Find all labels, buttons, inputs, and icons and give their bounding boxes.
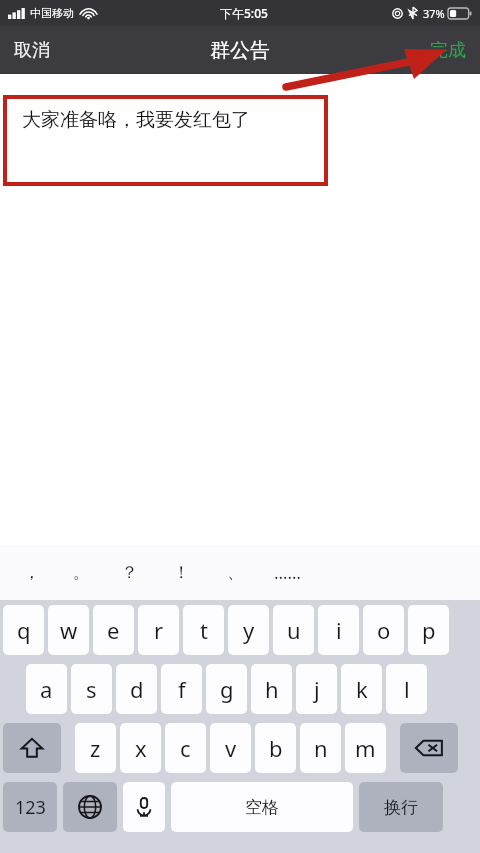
- button[interactable]: a: [26, 664, 67, 714]
- staticText: i: [336, 615, 342, 645]
- button[interactable]: g: [206, 664, 247, 714]
- button[interactable]: Delete: [400, 723, 458, 773]
- button[interactable]: z: [75, 723, 116, 773]
- button[interactable]: u: [273, 605, 314, 655]
- staticText: 中国移动: [30, 6, 74, 20]
- staticText: p: [422, 615, 436, 645]
- button[interactable]: d: [116, 664, 157, 714]
- button[interactable]: 大家准备咯，我要发红包了: [7, 99, 324, 182]
- button[interactable]: m: [345, 723, 386, 773]
- button[interactable]: q: [3, 605, 44, 655]
- button[interactable]: 。: [58, 545, 104, 600]
- button[interactable]: 空格: [171, 782, 353, 832]
- staticText: 换行: [384, 797, 418, 818]
- staticText: 。: [73, 562, 90, 583]
- button[interactable]: k: [341, 664, 382, 714]
- staticText: y: [243, 615, 255, 645]
- staticText: f: [178, 674, 186, 704]
- staticText: w: [60, 615, 78, 645]
- staticText: m: [355, 733, 376, 763]
- button[interactable]: x: [120, 723, 161, 773]
- button[interactable]: ？: [106, 545, 152, 600]
- staticText: 完成: [430, 39, 466, 62]
- button[interactable]: ！: [158, 545, 204, 600]
- button[interactable]: ……: [264, 545, 310, 600]
- button[interactable]: b: [255, 723, 296, 773]
- button[interactable]: r: [138, 605, 179, 655]
- button[interactable]: ，: [8, 545, 54, 600]
- button[interactable]: 123: [3, 782, 57, 832]
- button[interactable]: p: [408, 605, 449, 655]
- staticText: e: [107, 615, 120, 645]
- button[interactable]: s: [71, 664, 112, 714]
- staticText: u: [287, 615, 301, 645]
- button[interactable]: e: [93, 605, 134, 655]
- staticText: h: [265, 674, 279, 704]
- staticText: 123: [15, 795, 46, 820]
- staticText: 空格: [245, 797, 279, 818]
- staticText: 下午5:05: [220, 5, 268, 21]
- button[interactable]: o: [363, 605, 404, 655]
- staticText: a: [40, 674, 53, 704]
- staticText: ，: [23, 562, 40, 583]
- staticText: 大家准备咯，我要发红包了: [22, 108, 250, 132]
- button[interactable]: v: [210, 723, 251, 773]
- button[interactable]: y: [228, 605, 269, 655]
- button[interactable]: 取消: [14, 26, 50, 74]
- staticText: ……: [274, 561, 301, 584]
- button[interactable]: Change keyboard: [63, 782, 117, 832]
- staticText: s: [86, 674, 97, 704]
- staticText: z: [90, 733, 101, 763]
- staticText: g: [220, 674, 234, 704]
- button[interactable]: Voice input: [123, 782, 165, 832]
- button[interactable]: n: [300, 723, 341, 773]
- button[interactable]: w: [48, 605, 89, 655]
- button[interactable]: l: [386, 664, 427, 714]
- staticText: k: [356, 674, 368, 704]
- staticText: t: [200, 615, 208, 645]
- staticText: r: [154, 615, 164, 645]
- staticText: 取消: [14, 39, 50, 62]
- button[interactable]: Shift: [3, 723, 61, 773]
- staticText: ？: [121, 562, 138, 583]
- staticText: 37%: [423, 6, 445, 21]
- staticText: j: [314, 674, 320, 704]
- staticText: d: [130, 674, 144, 704]
- button[interactable]: c: [165, 723, 206, 773]
- button[interactable]: t: [183, 605, 224, 655]
- staticText: 、: [227, 562, 244, 583]
- staticText: 群公告: [210, 38, 270, 63]
- staticText: o: [377, 615, 391, 645]
- button[interactable]: 换行: [359, 782, 443, 832]
- button[interactable]: 、: [212, 545, 258, 600]
- button[interactable]: i: [318, 605, 359, 655]
- staticText: x: [135, 733, 147, 763]
- staticText: q: [17, 615, 31, 645]
- staticText: n: [314, 733, 328, 763]
- staticText: v: [225, 733, 237, 763]
- staticText: l: [404, 674, 410, 704]
- button[interactable]: 完成: [430, 26, 466, 74]
- staticText: c: [180, 733, 191, 763]
- button[interactable]: f: [161, 664, 202, 714]
- staticText: b: [269, 733, 283, 763]
- button[interactable]: j: [296, 664, 337, 714]
- staticText: ！: [173, 562, 190, 583]
- button[interactable]: h: [251, 664, 292, 714]
